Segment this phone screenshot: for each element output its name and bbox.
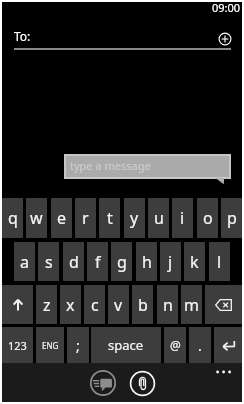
staticText: p (227, 207, 237, 229)
staticText: d (69, 251, 79, 273)
button[interactable] (90, 370, 116, 396)
staticText: r (82, 207, 89, 229)
button[interactable] (130, 371, 155, 396)
staticText: @ (170, 337, 181, 353)
button[interactable]: q (2, 198, 23, 238)
staticText: ; (76, 336, 80, 355)
button[interactable] (214, 327, 243, 363)
button[interactable]: g (111, 242, 132, 281)
staticText: z (43, 294, 51, 316)
staticText: j (168, 251, 173, 273)
button[interactable]: d (63, 242, 84, 281)
button[interactable]: m (181, 285, 202, 324)
button[interactable]: c (84, 285, 105, 324)
staticText: g (117, 251, 127, 273)
staticText: k (190, 251, 199, 273)
staticText: l (217, 251, 222, 273)
button[interactable]: v (108, 285, 129, 324)
button[interactable]: f (87, 242, 108, 281)
button[interactable]: n (157, 285, 178, 324)
button[interactable]: y (124, 198, 145, 238)
button[interactable]: k (184, 242, 205, 281)
staticText: To: (14, 28, 31, 44)
staticText: m (184, 294, 199, 316)
button[interactable]: r (75, 198, 96, 238)
staticText: 09:00 (212, 0, 241, 15)
button[interactable]: a (14, 242, 35, 281)
button[interactable] (212, 366, 236, 378)
button[interactable]: ENG (36, 327, 64, 363)
button[interactable]: space (91, 327, 161, 363)
button[interactable]: w (26, 198, 47, 238)
staticText: i (180, 207, 185, 229)
button[interactable]: z (36, 285, 57, 324)
button[interactable]: @ (164, 327, 186, 363)
button[interactable]: e (51, 198, 72, 238)
staticText: s (45, 251, 53, 273)
staticText: o (203, 207, 213, 229)
button[interactable]: . (189, 327, 211, 363)
button[interactable]: 123 (2, 327, 33, 363)
button[interactable]: l (209, 242, 230, 281)
button[interactable]: i (172, 198, 193, 238)
button[interactable]: p (221, 198, 242, 238)
staticText: x (66, 294, 75, 316)
staticText: n (163, 294, 173, 316)
button[interactable]: h (136, 242, 157, 281)
staticText: v (114, 294, 123, 316)
staticText: c (91, 294, 99, 316)
staticText: y (130, 207, 139, 229)
button[interactable]: u (148, 198, 169, 238)
button[interactable] (205, 285, 242, 324)
staticText: type a message (70, 158, 151, 173)
button[interactable] (218, 32, 232, 46)
button[interactable]: type a message (64, 154, 231, 179)
button[interactable]: s (38, 242, 59, 281)
button[interactable]: o (197, 198, 218, 238)
button[interactable] (2, 285, 33, 324)
staticText: e (57, 207, 67, 229)
button[interactable]: ; (67, 327, 89, 363)
staticText: ENG (42, 340, 59, 351)
staticText: w (30, 207, 43, 229)
staticText: q (8, 207, 18, 229)
staticText: t (107, 207, 113, 229)
staticText: . (198, 336, 202, 355)
button[interactable]: j (160, 242, 181, 281)
staticText: space (108, 336, 144, 354)
staticText: u (154, 207, 164, 229)
button[interactable]: x (60, 285, 81, 324)
staticText: a (20, 251, 29, 273)
staticText: f (95, 251, 101, 273)
staticText: 123 (8, 338, 27, 353)
staticText: h (142, 251, 152, 273)
button[interactable]: b (132, 285, 153, 324)
button[interactable]: t (99, 198, 120, 238)
staticText: b (138, 294, 148, 316)
